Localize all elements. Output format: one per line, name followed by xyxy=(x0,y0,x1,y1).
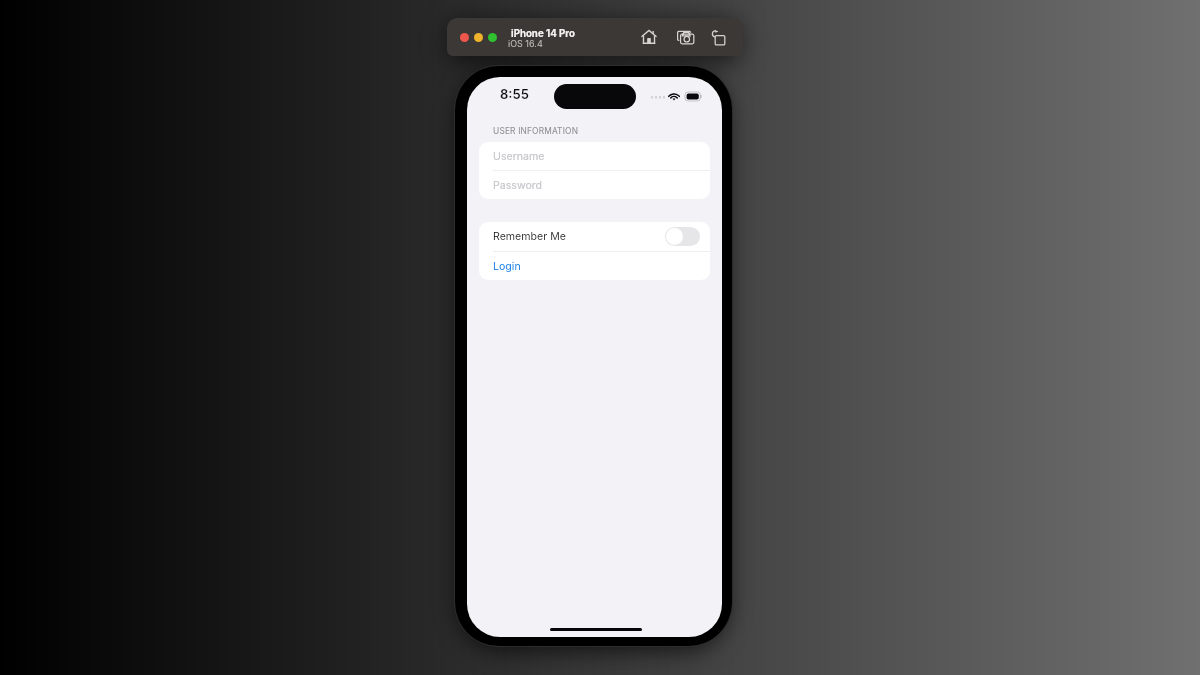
staticText: Username xyxy=(493,150,545,163)
staticText: Login xyxy=(493,260,521,273)
button[interactable]: Close xyxy=(460,33,469,42)
button[interactable]: Maximise xyxy=(488,33,497,42)
button[interactable]: Password xyxy=(479,171,710,199)
button[interactable]: Remember Me toggle xyxy=(665,227,700,246)
staticText: USER INFORMATION xyxy=(493,126,579,136)
staticText: Remember Me xyxy=(493,230,566,243)
button[interactable]: Login xyxy=(479,252,710,280)
button[interactable]: Home xyxy=(638,26,660,48)
staticText: iPhone 14 Pro xyxy=(511,28,575,40)
button[interactable]: Username xyxy=(479,142,710,170)
staticText: iOS 16.4 xyxy=(508,38,543,49)
staticText: 8:55 xyxy=(500,86,529,102)
button[interactable]: Screenshot xyxy=(674,26,696,48)
button[interactable]: Rotate xyxy=(707,26,729,48)
staticText: Password xyxy=(493,179,543,192)
button[interactable]: Minimise xyxy=(474,33,483,42)
button[interactable]: Remember Me xyxy=(479,222,710,251)
